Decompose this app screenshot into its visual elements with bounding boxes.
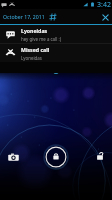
staticText: Lyoneidas xyxy=(21,27,48,34)
button[interactable]: Lyoneidas xyxy=(0,25,112,43)
button[interactable]: Unlock xyxy=(42,143,70,171)
button[interactable]: Clear all notifications xyxy=(99,11,111,23)
staticText: Missed call xyxy=(21,46,50,53)
button[interactable]: Camera xyxy=(7,151,19,163)
button[interactable]: Missed call xyxy=(0,44,112,62)
button[interactable]: Unlock shortcut xyxy=(94,151,106,163)
staticText: October 17, 2011 xyxy=(3,13,45,20)
staticText: hey give me a call :) xyxy=(21,36,61,42)
button[interactable]: Notification handle xyxy=(52,67,60,75)
staticText: Lyoneidas xyxy=(21,55,42,61)
staticText: 3:42 xyxy=(97,0,111,9)
button[interactable]: Quick settings xyxy=(47,11,58,22)
